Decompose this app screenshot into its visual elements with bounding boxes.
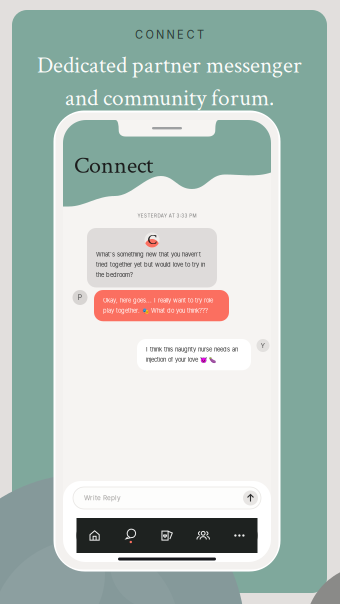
staticText: What's something new that you haven't tr…	[96, 251, 205, 278]
staticText: C	[147, 230, 156, 249]
button[interactable]: Messages	[113, 518, 149, 553]
button[interactable]: Home	[76, 518, 113, 553]
staticText: Okay, here goes... I really want to try …	[103, 297, 213, 314]
staticText: Write Reply	[84, 494, 121, 502]
staticText: CONNECT	[135, 28, 204, 41]
staticText: P	[77, 293, 82, 302]
button[interactable]: Community	[185, 518, 221, 553]
button[interactable]: More	[221, 518, 257, 553]
button[interactable]: Write Reply	[73, 487, 261, 509]
staticText: and community forum.	[65, 83, 274, 113]
staticText: Connect	[74, 150, 153, 181]
staticText: I think this naughty nurse needs an inje…	[146, 346, 238, 363]
staticText: Y	[260, 341, 265, 350]
staticText: Dedicated partner messenger	[37, 50, 302, 81]
staticText: YESTERDAY AT 3:33 PM	[137, 213, 197, 218]
button[interactable]: Cards	[149, 518, 185, 553]
